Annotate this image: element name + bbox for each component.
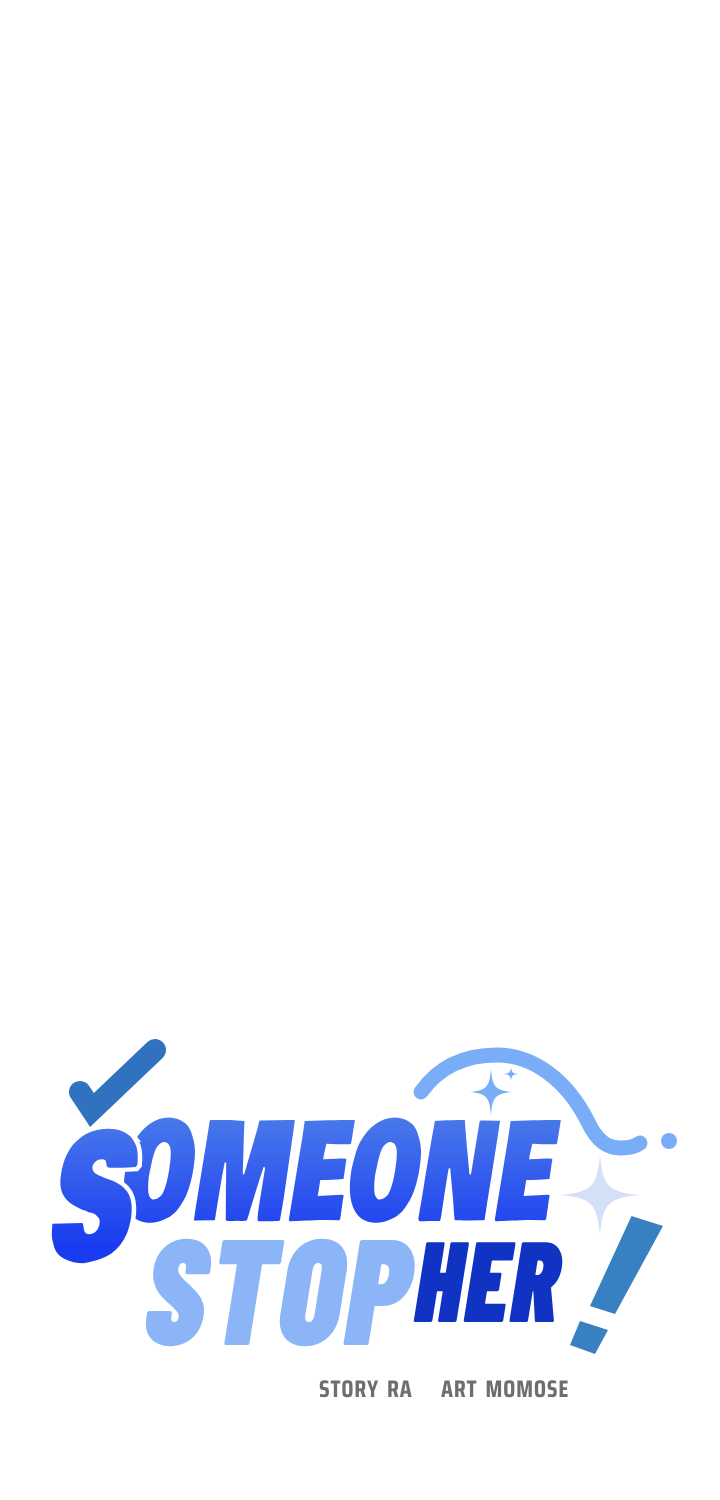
button[interactable]: Someone Stop Her title bbox=[0, 0, 720, 1500]
